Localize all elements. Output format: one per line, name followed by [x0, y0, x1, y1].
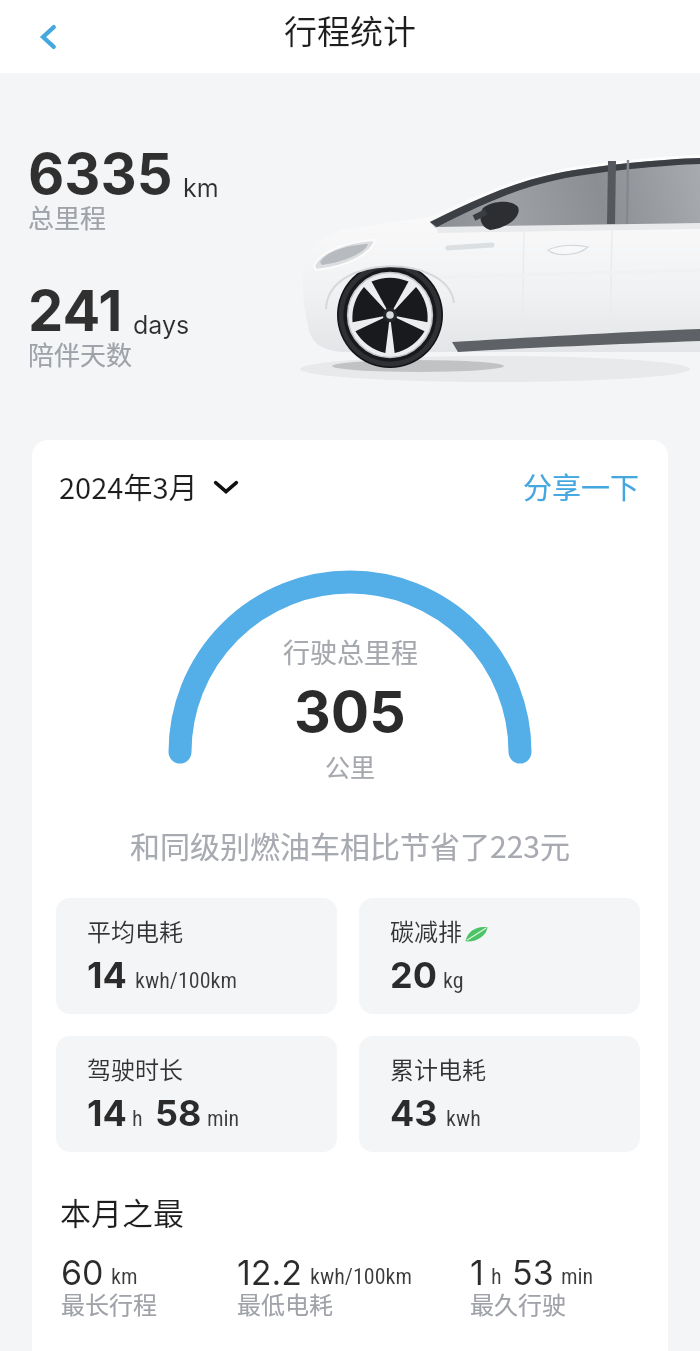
staticText: 最低电耗	[237, 1286, 333, 1321]
staticText: 行程统计	[284, 6, 416, 54]
staticText: 最长行程	[61, 1286, 157, 1321]
button[interactable]: Back	[26, 14, 72, 60]
staticText: 总里程	[28, 198, 107, 236]
staticText: 6335	[28, 140, 173, 208]
staticText: 53	[512, 1252, 554, 1293]
staticText: 平均电耗	[87, 913, 183, 948]
staticText: 305	[294, 677, 406, 746]
staticText: 驾驶时长	[87, 1051, 183, 1086]
staticText: 分享一下	[523, 465, 640, 507]
staticText: 和同级别燃油车相比节省了223元	[32, 823, 668, 866]
staticText: 43	[390, 1091, 438, 1135]
staticText: km	[183, 173, 219, 203]
staticText: 1	[470, 1252, 484, 1293]
staticText: 本月之最	[60, 1189, 184, 1234]
staticText: 最久行驶	[470, 1286, 566, 1321]
staticText: min	[561, 1264, 594, 1290]
staticText: days	[133, 310, 190, 340]
button[interactable]: 平均电耗	[56, 898, 337, 1014]
staticText: kwh/100km	[310, 1264, 413, 1290]
staticText: 60	[61, 1252, 104, 1293]
staticText: h	[132, 1106, 143, 1132]
staticText: 241	[28, 277, 123, 345]
staticText: 陪伴天数	[28, 335, 133, 373]
staticText: kwh/100km	[135, 968, 238, 994]
staticText: 行驶总里程	[283, 632, 418, 671]
staticText: kg	[443, 968, 464, 994]
button[interactable]: 碳减排	[359, 898, 640, 1014]
button[interactable]: 驾驶时长	[56, 1036, 337, 1152]
staticText: 碳减排	[390, 913, 462, 948]
staticText: km	[111, 1264, 138, 1290]
button[interactable]: 分享一下	[523, 465, 640, 507]
button[interactable]: 2024年3月	[59, 465, 240, 507]
staticText: h	[491, 1264, 502, 1290]
staticText: 20	[390, 953, 437, 997]
button[interactable]: 累计电耗	[359, 1036, 640, 1152]
staticText: kwh	[446, 1106, 481, 1132]
staticText: 公里	[325, 748, 376, 784]
staticText: 2024年3月	[59, 465, 198, 507]
staticText: 14	[87, 953, 127, 997]
staticText: min	[207, 1106, 240, 1132]
staticText: 14	[87, 1091, 127, 1135]
staticText: 累计电耗	[390, 1051, 486, 1086]
staticText: 12.2	[237, 1252, 303, 1293]
staticText: 58	[155, 1091, 202, 1135]
